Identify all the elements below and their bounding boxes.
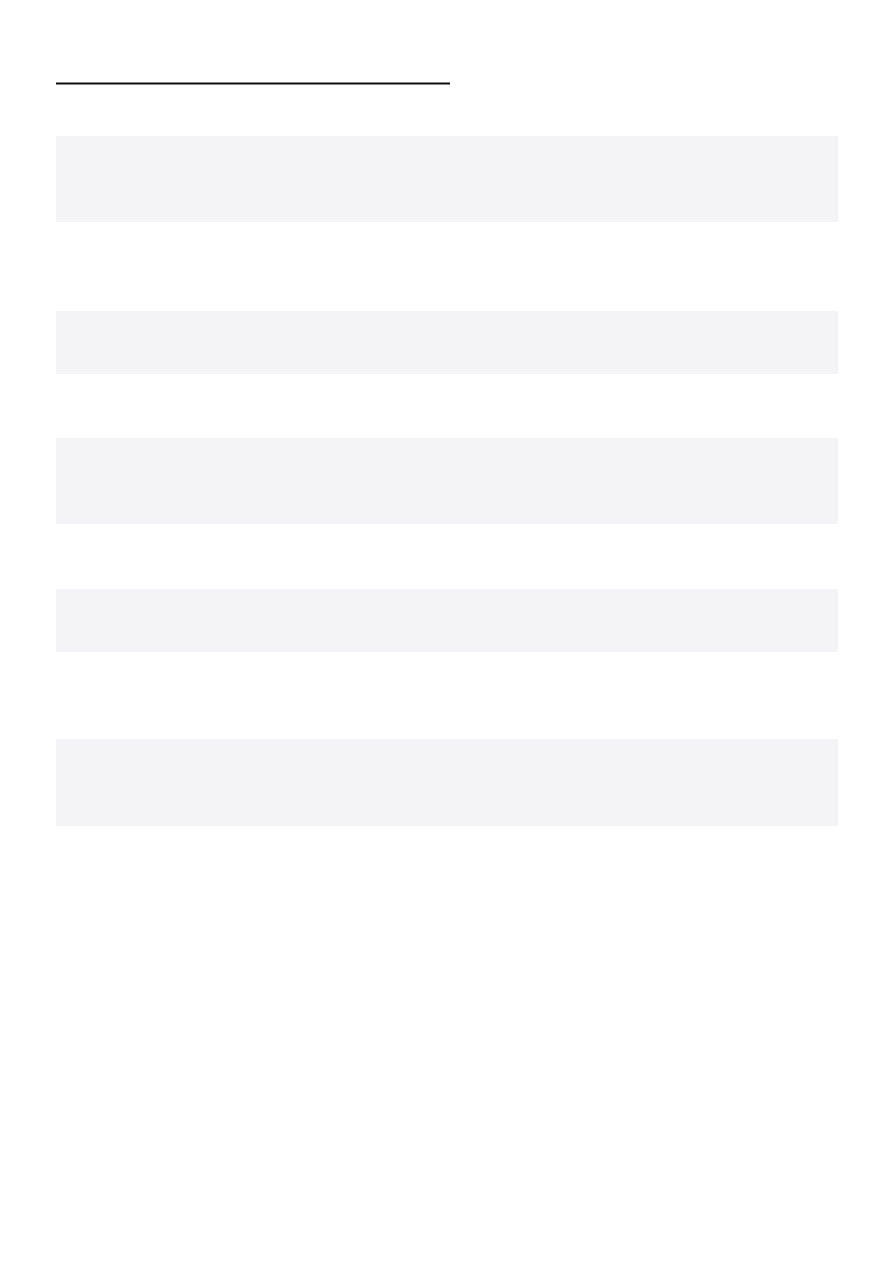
other: Title divider <box>56 80 450 88</box>
